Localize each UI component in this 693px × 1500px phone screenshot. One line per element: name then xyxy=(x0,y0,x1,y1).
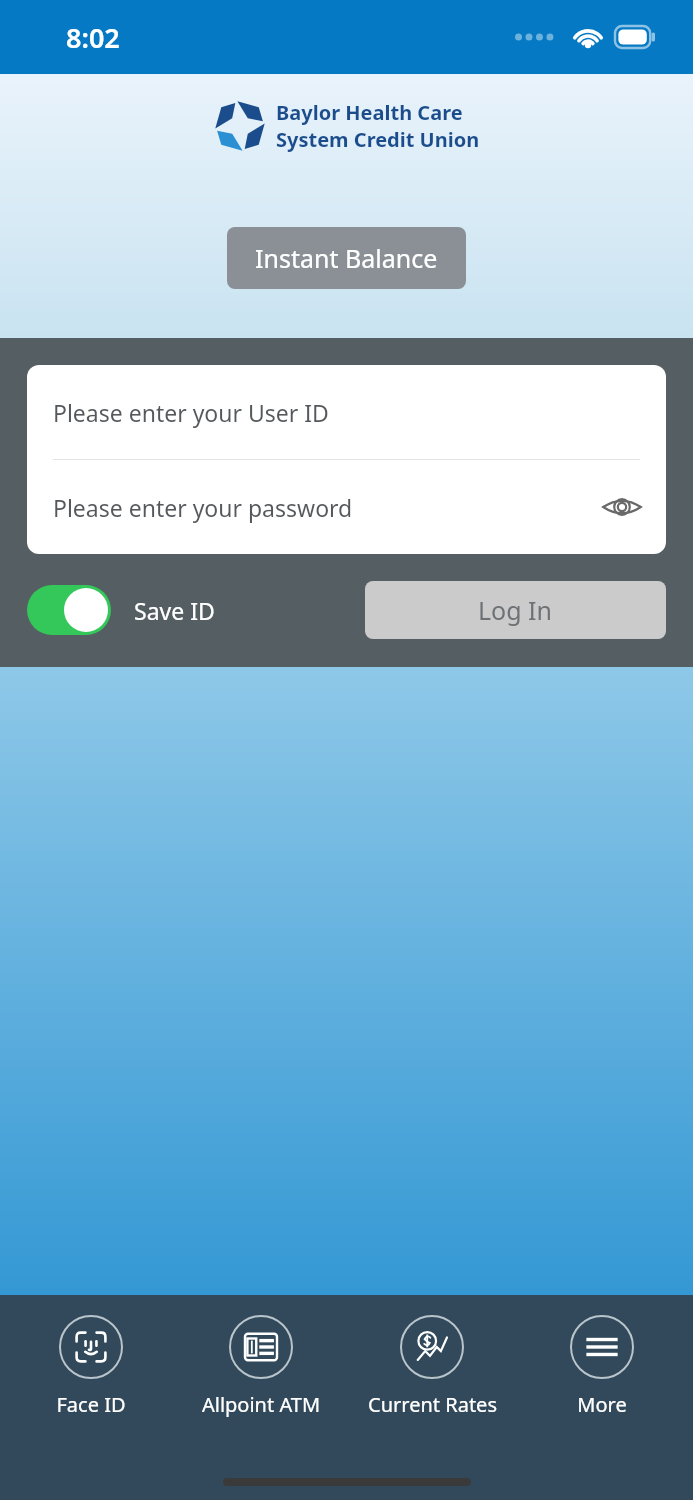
button[interactable]: Please enter your password xyxy=(27,460,666,554)
staticText: Allpoint ATM Loc... xyxy=(181,1391,341,1418)
staticText: Current Rates xyxy=(368,1391,497,1418)
button[interactable]: Please enter your User ID xyxy=(27,365,666,459)
button[interactable]: Allpoint ATM Loc... xyxy=(181,1315,341,1418)
staticText: Log In xyxy=(478,593,553,627)
button[interactable]: Instant Balance xyxy=(227,227,466,289)
button[interactable]: Show password xyxy=(598,483,646,531)
staticText: Save ID xyxy=(134,595,215,626)
button[interactable]: Face ID xyxy=(11,1315,171,1418)
staticText: More xyxy=(577,1391,627,1418)
button[interactable]: More xyxy=(522,1315,682,1418)
staticText: Baylor Health Care xyxy=(276,99,463,126)
staticText: Face ID xyxy=(56,1391,126,1418)
button[interactable]: Current Rates xyxy=(352,1315,512,1418)
button[interactable]: Save ID xyxy=(27,585,215,635)
staticText: 8:02 xyxy=(66,19,120,56)
staticText: Please enter your User ID xyxy=(53,397,329,428)
staticText: Instant Balance xyxy=(255,241,438,275)
button[interactable]: Log In xyxy=(365,581,666,639)
staticText: Please enter your password xyxy=(53,492,353,523)
staticText: System Credit Union xyxy=(276,126,480,153)
